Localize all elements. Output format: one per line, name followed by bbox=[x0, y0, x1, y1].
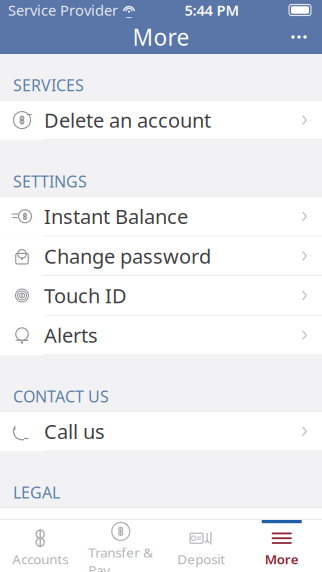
button[interactable]: Alerts bbox=[0, 316, 322, 355]
staticText: Service Provider bbox=[8, 0, 118, 20]
staticText: SETTINGS bbox=[13, 171, 87, 192]
button[interactable]: Call us bbox=[0, 412, 322, 451]
button[interactable]: More options bbox=[282, 20, 316, 54]
button[interactable]: Change password bbox=[0, 236, 322, 275]
staticText: Alerts bbox=[44, 322, 98, 348]
staticText: CONTACT US bbox=[13, 386, 109, 407]
button[interactable]: More bbox=[241, 520, 322, 572]
staticText: Instant Balance bbox=[44, 203, 188, 230]
button[interactable]: Instant Balance bbox=[0, 197, 322, 236]
button[interactable]: Accounts bbox=[0, 520, 80, 572]
staticText: Call us bbox=[44, 418, 105, 445]
staticText: More bbox=[265, 550, 299, 568]
staticText: Delete an account bbox=[44, 107, 211, 133]
button[interactable]: Touch ID bbox=[0, 276, 322, 315]
staticText: Touch ID bbox=[44, 282, 127, 309]
staticText: Accounts bbox=[12, 550, 68, 568]
button[interactable]: Transfer & Pay bbox=[80, 520, 161, 572]
staticText: Transfer & Pay bbox=[88, 543, 153, 572]
staticText: 5:44 PM bbox=[184, 0, 239, 20]
staticText: Change password bbox=[44, 243, 211, 269]
button[interactable]: Deposit bbox=[161, 520, 241, 572]
staticText: SERVICES bbox=[13, 74, 84, 96]
staticText: More bbox=[132, 22, 189, 52]
staticText: Deposit bbox=[177, 550, 225, 568]
staticText: LEGAL bbox=[13, 482, 60, 503]
button[interactable]: Delete an account bbox=[0, 101, 322, 140]
